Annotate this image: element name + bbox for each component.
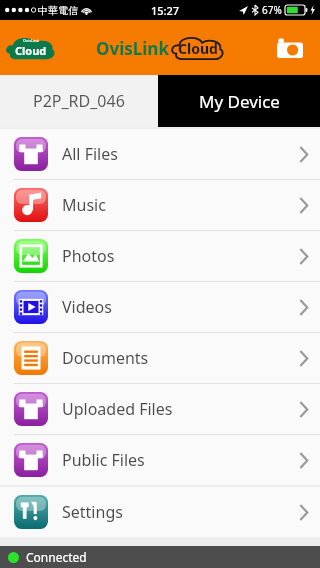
button[interactable]: Videos (0, 282, 320, 333)
staticText: Public Files (62, 449, 145, 471)
staticText: 15:27 (151, 3, 180, 18)
staticText: All Files (62, 143, 118, 165)
staticText: Cloud (15, 43, 47, 58)
staticText: Music (62, 194, 106, 216)
staticText: OvisLink (96, 37, 169, 60)
button[interactable]: Photos (0, 231, 320, 282)
button[interactable]: Music (0, 180, 320, 231)
staticText: Settings (62, 501, 123, 523)
button[interactable]: OvisLink Cloud home (6, 35, 56, 61)
button[interactable]: All Files (0, 129, 320, 180)
staticText: Photos (62, 245, 115, 267)
staticText: Uploaded Files (62, 398, 173, 420)
button[interactable]: Documents (0, 333, 320, 384)
staticText: 中華電信 (38, 4, 78, 17)
staticText: Videos (62, 296, 112, 318)
button[interactable]: My Device (158, 75, 320, 127)
button[interactable]: Uploaded Files (0, 384, 320, 435)
staticText: P2P_RD_046 (33, 90, 125, 112)
staticText: Documents (62, 347, 149, 369)
button[interactable]: Public Files (0, 435, 320, 485)
staticText: Cloud (178, 39, 218, 58)
button[interactable]: P2P_RD_046 (0, 75, 158, 127)
staticText: My Device (199, 90, 280, 113)
button[interactable]: Settings (0, 487, 320, 537)
staticText: 67% (262, 3, 282, 17)
staticText: Connected (26, 549, 87, 565)
button[interactable]: Camera (270, 28, 310, 68)
staticText: OvisLink (23, 38, 39, 43)
